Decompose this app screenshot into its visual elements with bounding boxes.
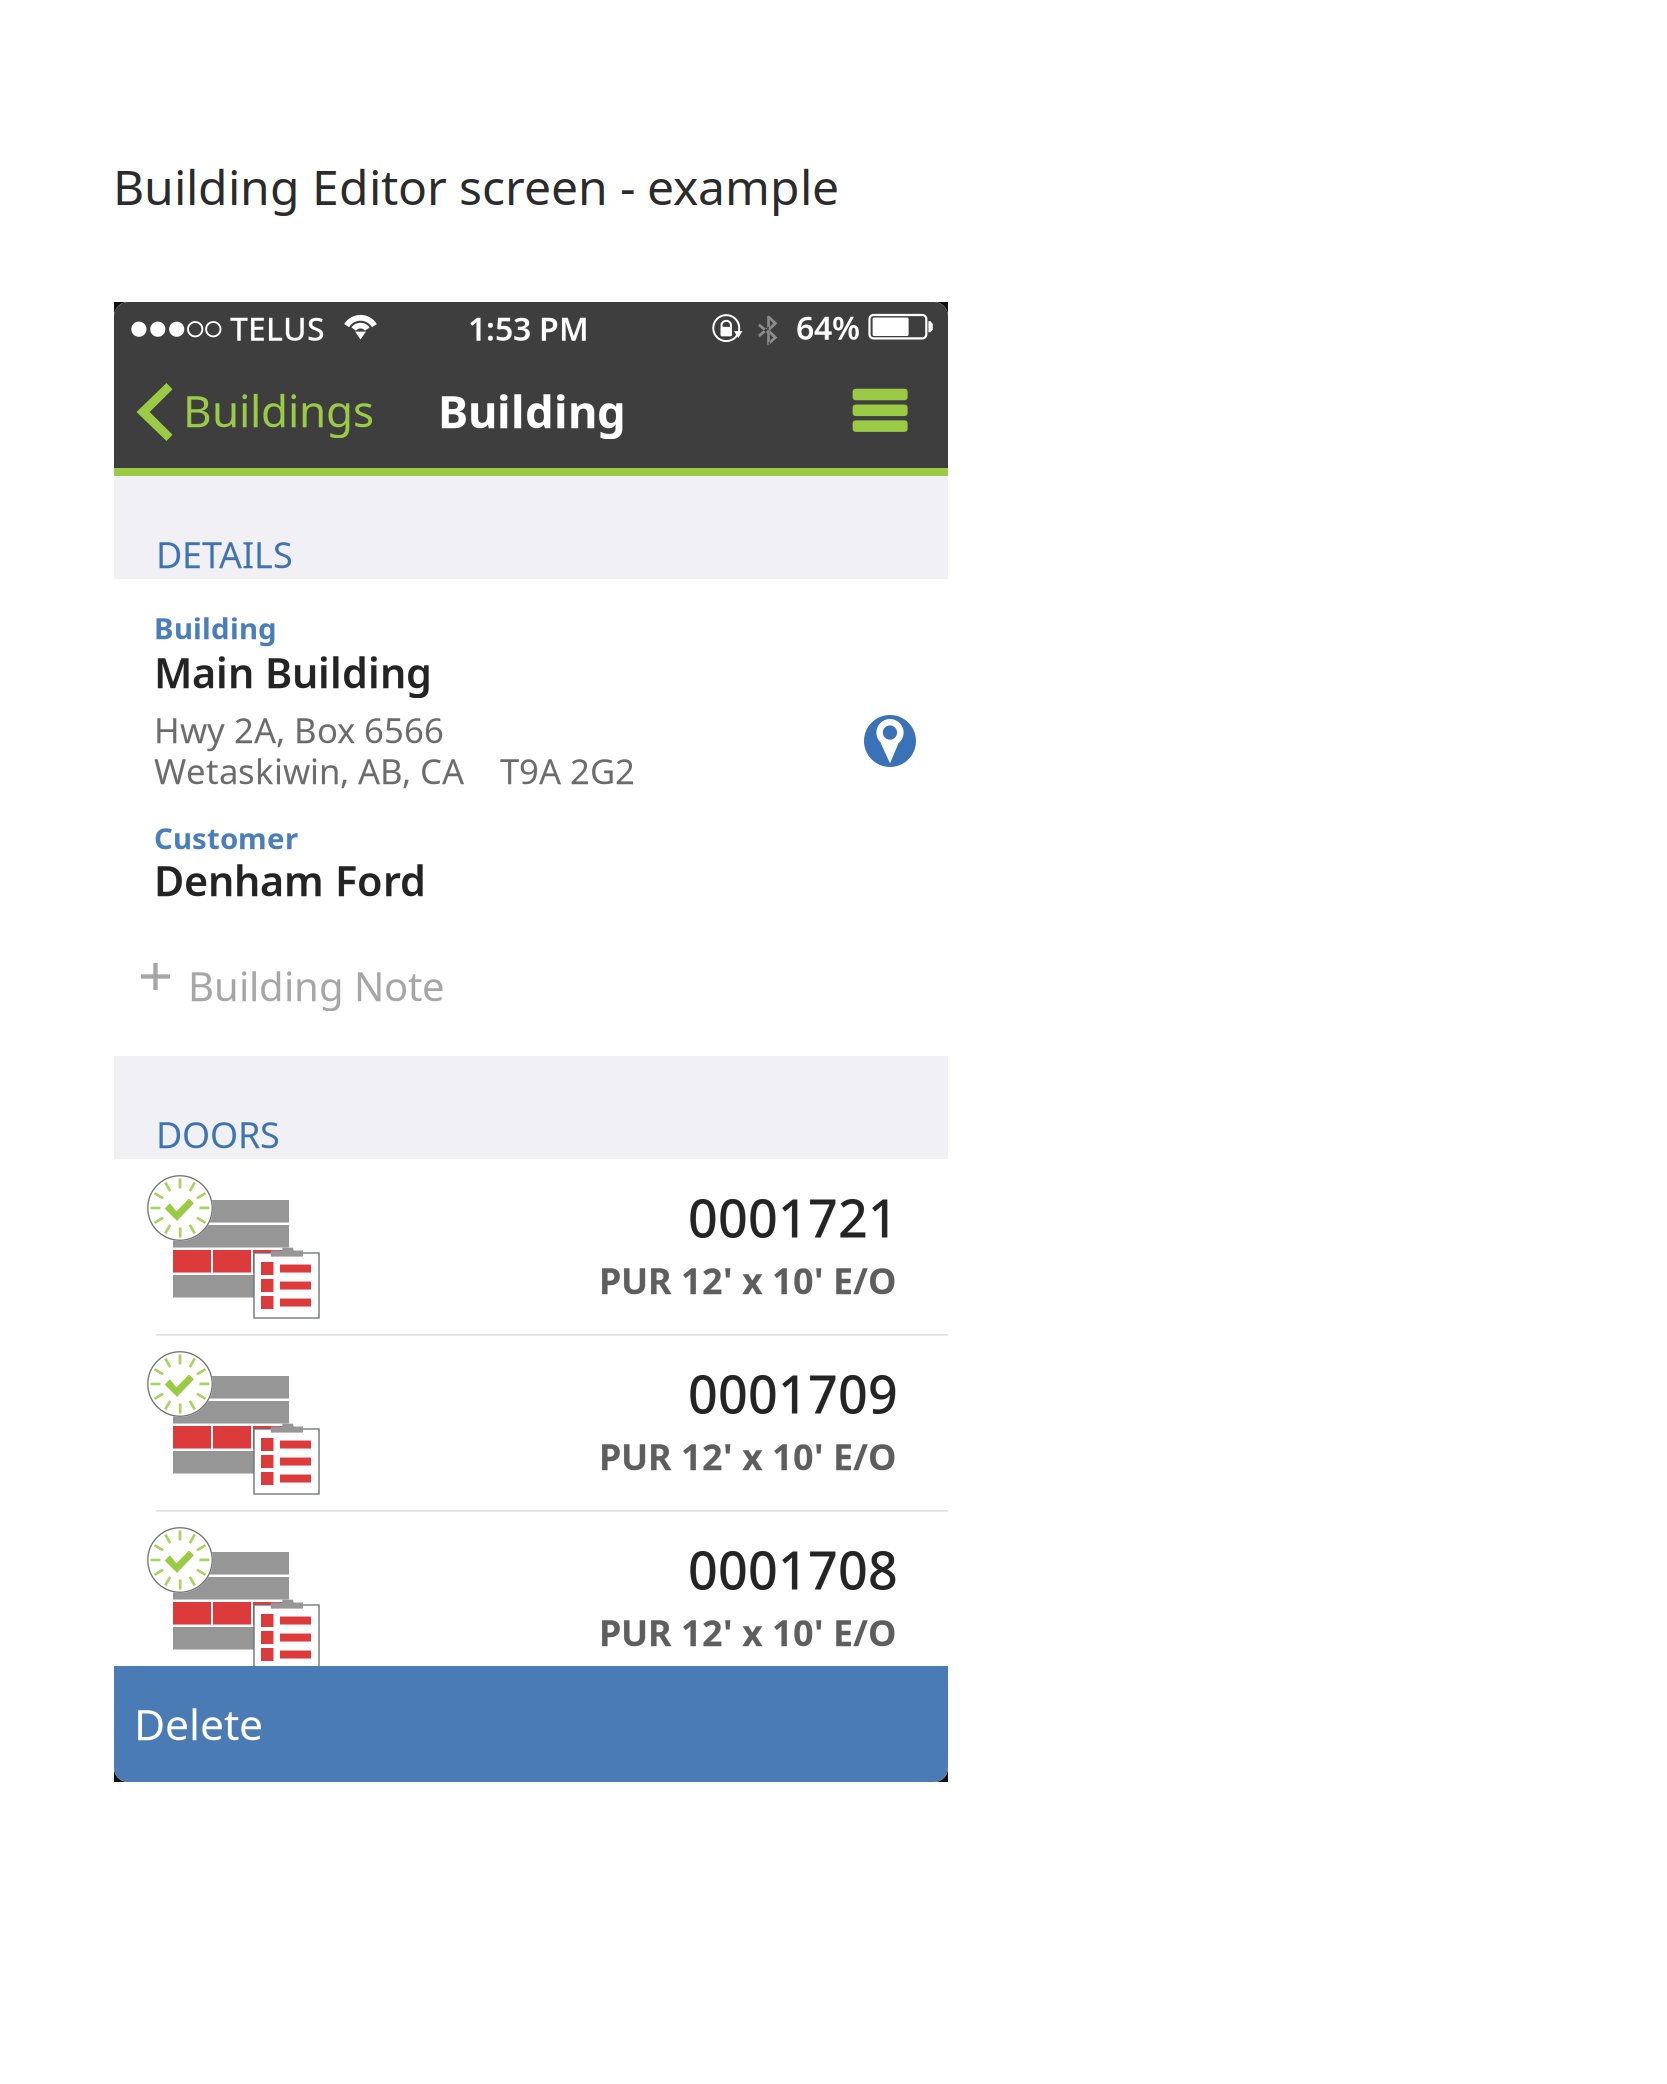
staticText: TELUS <box>230 307 325 350</box>
staticText: PUR 12' x 10' E/O <box>599 1608 896 1656</box>
staticText: Wetaskiwin, AB, CA T9A 2G2 <box>154 748 635 794</box>
button[interactable]: 0001708 <box>114 1511 948 1687</box>
button[interactable]: Menu <box>833 360 933 468</box>
staticText: 0001709 <box>688 1359 898 1428</box>
staticText: 0001708 <box>688 1535 898 1604</box>
staticText: Building Editor screen - example <box>113 154 839 218</box>
staticText: Hwy 2A, Box 6566 <box>154 707 444 753</box>
staticText: Building <box>438 381 626 441</box>
staticText: 0001721 <box>688 1183 898 1252</box>
button[interactable]: Buildings <box>114 360 414 468</box>
button[interactable]: Show on map <box>848 699 932 783</box>
staticText: Customer <box>154 818 298 857</box>
button[interactable]: 0001709 <box>114 1335 948 1511</box>
button[interactable]: Delete <box>114 1666 948 1782</box>
button[interactable]: 0001721 <box>114 1159 948 1335</box>
staticText: Building Note <box>188 959 445 1012</box>
staticText: Main Building <box>154 645 432 700</box>
staticText: Buildings <box>183 381 374 439</box>
staticText: PUR 12' x 10' E/O <box>599 1432 896 1480</box>
staticText: DETAILS <box>156 530 293 578</box>
staticText: Delete <box>134 1695 263 1752</box>
staticText: 1:53 PM <box>468 307 589 350</box>
staticText: PUR 12' x 10' E/O <box>599 1256 896 1304</box>
button[interactable]: Building Note <box>141 950 511 1022</box>
staticText: Building <box>154 608 277 647</box>
staticText: DOORS <box>156 1110 280 1158</box>
staticText: Denham Ford <box>154 853 426 908</box>
staticText: 64% <box>796 306 860 349</box>
